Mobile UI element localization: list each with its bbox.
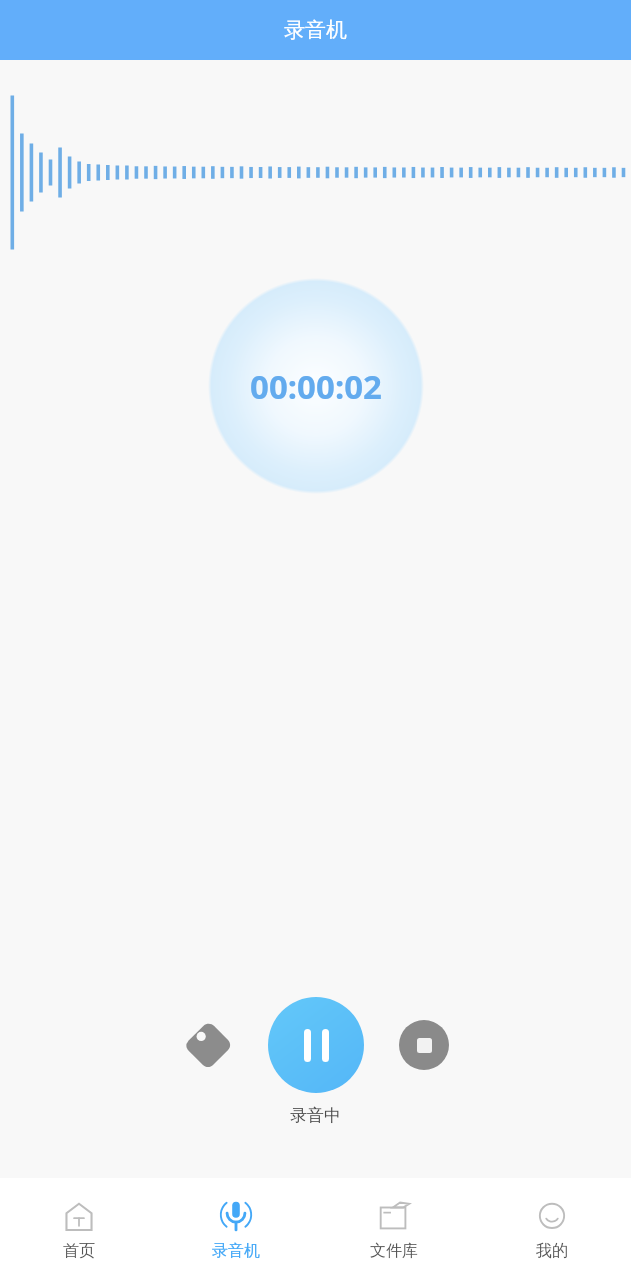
staticText: 00:00:02 — [250, 364, 382, 409]
staticText: 录音机 — [212, 1241, 260, 1261]
staticText: 首页 — [63, 1241, 95, 1261]
button[interactable]: Pause recording — [268, 997, 364, 1093]
button[interactable]: Add tag — [172, 1009, 244, 1081]
staticText: 录音中 — [290, 1105, 341, 1126]
button[interactable]: 录音机 — [157, 1188, 315, 1271]
staticText: 录音机 — [284, 17, 347, 43]
button[interactable]: 首页 — [0, 1188, 157, 1271]
button[interactable]: Stop recording — [388, 1009, 460, 1081]
staticText: 我的 — [536, 1241, 568, 1261]
button[interactable]: 文件库 — [315, 1188, 473, 1271]
button[interactable]: 我的 — [473, 1188, 631, 1271]
staticText: 文件库 — [370, 1241, 418, 1261]
